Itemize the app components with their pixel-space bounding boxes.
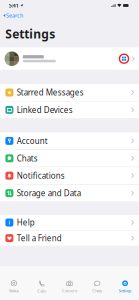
staticText: Starred Messages bbox=[17, 87, 84, 98]
staticText: i bbox=[8, 219, 10, 226]
staticText: Search bbox=[6, 12, 23, 19]
button[interactable]: Linked Devices bbox=[0, 101, 139, 118]
button[interactable]: i bbox=[0, 215, 139, 230]
button[interactable]: Chats bbox=[83, 266, 111, 300]
staticText: Tell a Friend bbox=[17, 233, 62, 243]
button[interactable] bbox=[0, 47, 139, 70]
staticText: Help bbox=[17, 217, 35, 228]
staticText: 5:41 bbox=[9, 2, 19, 9]
button[interactable]: Status bbox=[0, 266, 28, 300]
staticText: Storage and Data bbox=[17, 188, 81, 198]
staticText: Camera bbox=[62, 288, 77, 293]
button[interactable]: Starred Messages bbox=[0, 84, 139, 101]
staticText: Settings bbox=[119, 288, 132, 293]
button[interactable]: Storage and Data bbox=[0, 185, 139, 202]
staticText: Calls bbox=[37, 288, 46, 293]
staticText: Chats bbox=[17, 153, 38, 164]
button[interactable]: My QR code bbox=[118, 53, 129, 64]
button[interactable]: Account bbox=[0, 132, 139, 149]
staticText: Status bbox=[9, 288, 19, 293]
button[interactable]: Tell a Friend bbox=[0, 230, 139, 246]
staticText: Notifications bbox=[17, 170, 65, 181]
button[interactable]: Calls bbox=[28, 266, 56, 300]
button[interactable]: Settings bbox=[111, 266, 139, 300]
staticText: Account bbox=[17, 136, 48, 146]
staticText: Settings bbox=[5, 26, 55, 42]
button[interactable]: Camera bbox=[56, 266, 83, 300]
staticText: Chats bbox=[92, 288, 102, 293]
button[interactable]: Chats bbox=[0, 150, 139, 167]
button[interactable]: Notifications bbox=[0, 167, 139, 184]
button[interactable]: Search bbox=[0, 11, 23, 20]
staticText: Linked Devices bbox=[17, 105, 73, 115]
